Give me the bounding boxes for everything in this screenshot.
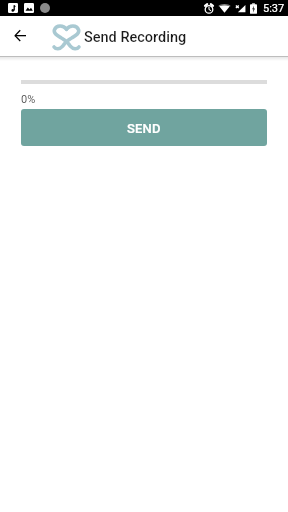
staticText: SEND [127, 121, 161, 136]
staticText: 5:37 [263, 2, 285, 15]
staticText: Send Recording [84, 29, 187, 46]
staticText: 0% [21, 93, 36, 106]
button[interactable]: SEND [21, 109, 267, 146]
button[interactable]: Back [0, 16, 40, 56]
